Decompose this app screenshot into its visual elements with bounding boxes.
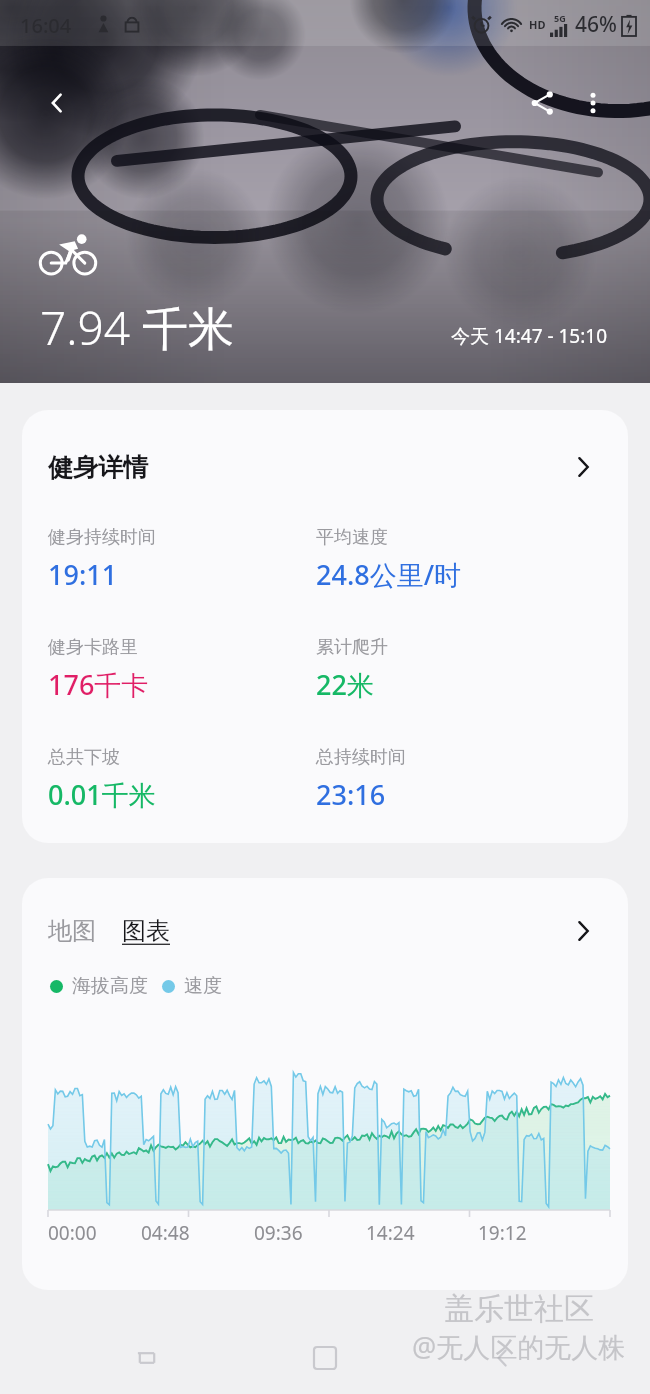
button[interactable]: Home <box>294 1327 356 1389</box>
button[interactable]: Open details <box>560 444 606 490</box>
staticText: 7.94 千米 <box>40 296 234 359</box>
staticText: 健身详情 <box>48 452 560 483</box>
staticText: 累计爬升 <box>316 636 388 659</box>
button[interactable]: 图表 <box>122 916 170 946</box>
button[interactable]: Recent apps <box>116 1327 178 1389</box>
button[interactable]: Back <box>472 1327 534 1389</box>
staticText: 总持续时间 <box>316 746 406 769</box>
staticText: 16:04 <box>20 12 72 39</box>
staticText: 24.8公里/时 <box>316 556 462 593</box>
staticText: 19:11 <box>48 556 118 593</box>
staticText: 5G <box>554 12 566 24</box>
staticText: 14:24 <box>366 1220 415 1246</box>
button[interactable]: 地图 <box>48 916 100 946</box>
staticText: 今天 14:47 - 15:10 <box>451 323 608 349</box>
staticText: 00:00 <box>48 1220 97 1246</box>
staticText: 速度 <box>184 974 222 998</box>
staticText: 19:12 <box>478 1220 527 1246</box>
staticText: 04:48 <box>141 1220 190 1246</box>
staticText: 09:36 <box>254 1220 303 1246</box>
staticText: 46% <box>575 10 617 39</box>
staticText: 图表 <box>122 916 170 946</box>
button[interactable]: Back <box>33 79 81 127</box>
staticText: HD <box>529 17 546 32</box>
staticText: 22米 <box>316 666 374 703</box>
staticText: 176千卡 <box>48 666 149 703</box>
staticText: 总共下坡 <box>48 746 120 769</box>
staticText: 盖乐世社区 <box>444 1290 594 1328</box>
staticText: 地图 <box>48 916 96 946</box>
button[interactable]: Open details <box>560 908 606 954</box>
staticText: @无人区的无人株 <box>412 1328 626 1362</box>
button[interactable]: More options <box>569 79 617 127</box>
staticText: 健身卡路里 <box>48 636 138 659</box>
button[interactable]: Share <box>518 79 566 127</box>
staticText: 海拔高度 <box>72 974 148 998</box>
staticText: 23:16 <box>316 776 386 813</box>
staticText: 平均速度 <box>316 526 388 549</box>
staticText: 健身持续时间 <box>48 526 156 549</box>
staticText: 0.01千米 <box>48 776 156 813</box>
button[interactable]: 健身详情 <box>22 410 628 843</box>
